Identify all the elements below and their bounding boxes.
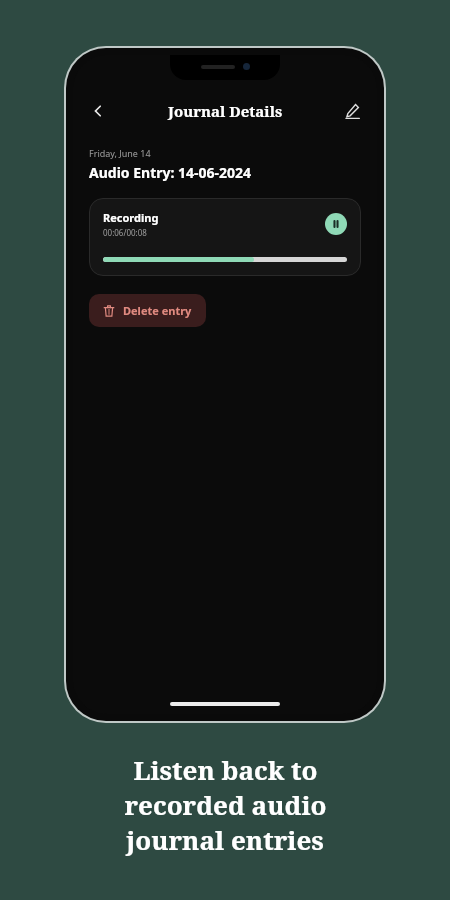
staticText: Journal Details (168, 101, 283, 121)
button[interactable]: Pause (325, 213, 347, 235)
button[interactable]: Edit (337, 96, 367, 126)
button[interactable]: Recording (89, 198, 361, 276)
staticText: Recording (103, 210, 159, 225)
staticText: 00:06/00:08 (103, 227, 147, 238)
button[interactable]: Back (83, 96, 113, 126)
button[interactable]: Delete entry (89, 294, 206, 327)
staticText: recorded audio (124, 787, 327, 822)
staticText: journal entries (126, 822, 324, 857)
staticText: Friday, June 14 (89, 147, 151, 159)
staticText: Listen back to (133, 752, 318, 787)
staticText: Delete entry (123, 303, 192, 318)
staticText: Audio Entry: 14-06-2024 (89, 163, 252, 182)
